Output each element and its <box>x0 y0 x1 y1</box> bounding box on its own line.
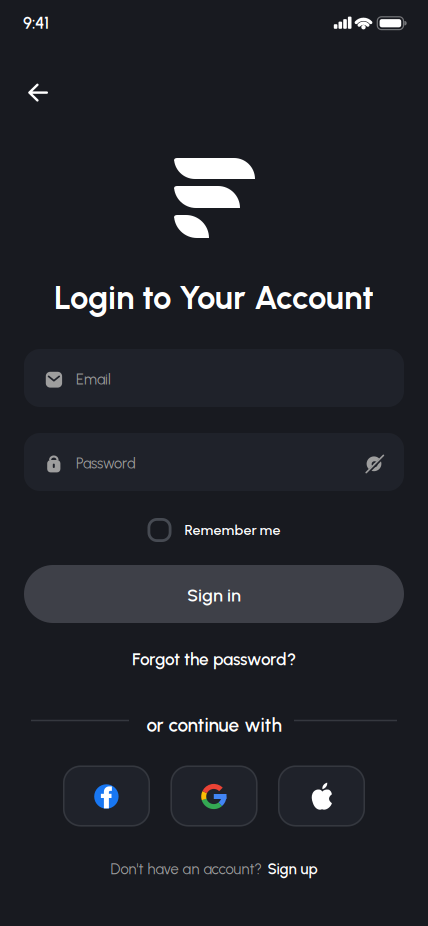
staticText: 9:41 <box>23 13 49 33</box>
staticText: Sign up <box>267 860 317 878</box>
staticText: Forgot the password? <box>132 649 296 670</box>
staticText: Login to Your Account <box>54 278 374 317</box>
staticText: Password <box>76 455 136 472</box>
staticText: Email <box>76 371 111 388</box>
staticText: or continue with <box>146 714 281 736</box>
staticText: Sign in <box>187 584 241 606</box>
staticText: Don't have an account? <box>110 860 261 878</box>
staticText: Remember me <box>184 521 280 539</box>
